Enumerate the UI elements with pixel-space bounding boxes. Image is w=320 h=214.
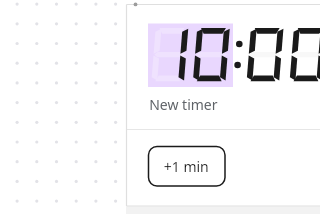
button[interactable] (148, 146, 225, 186)
button[interactable]: Minutes, 10 (148, 23, 233, 87)
